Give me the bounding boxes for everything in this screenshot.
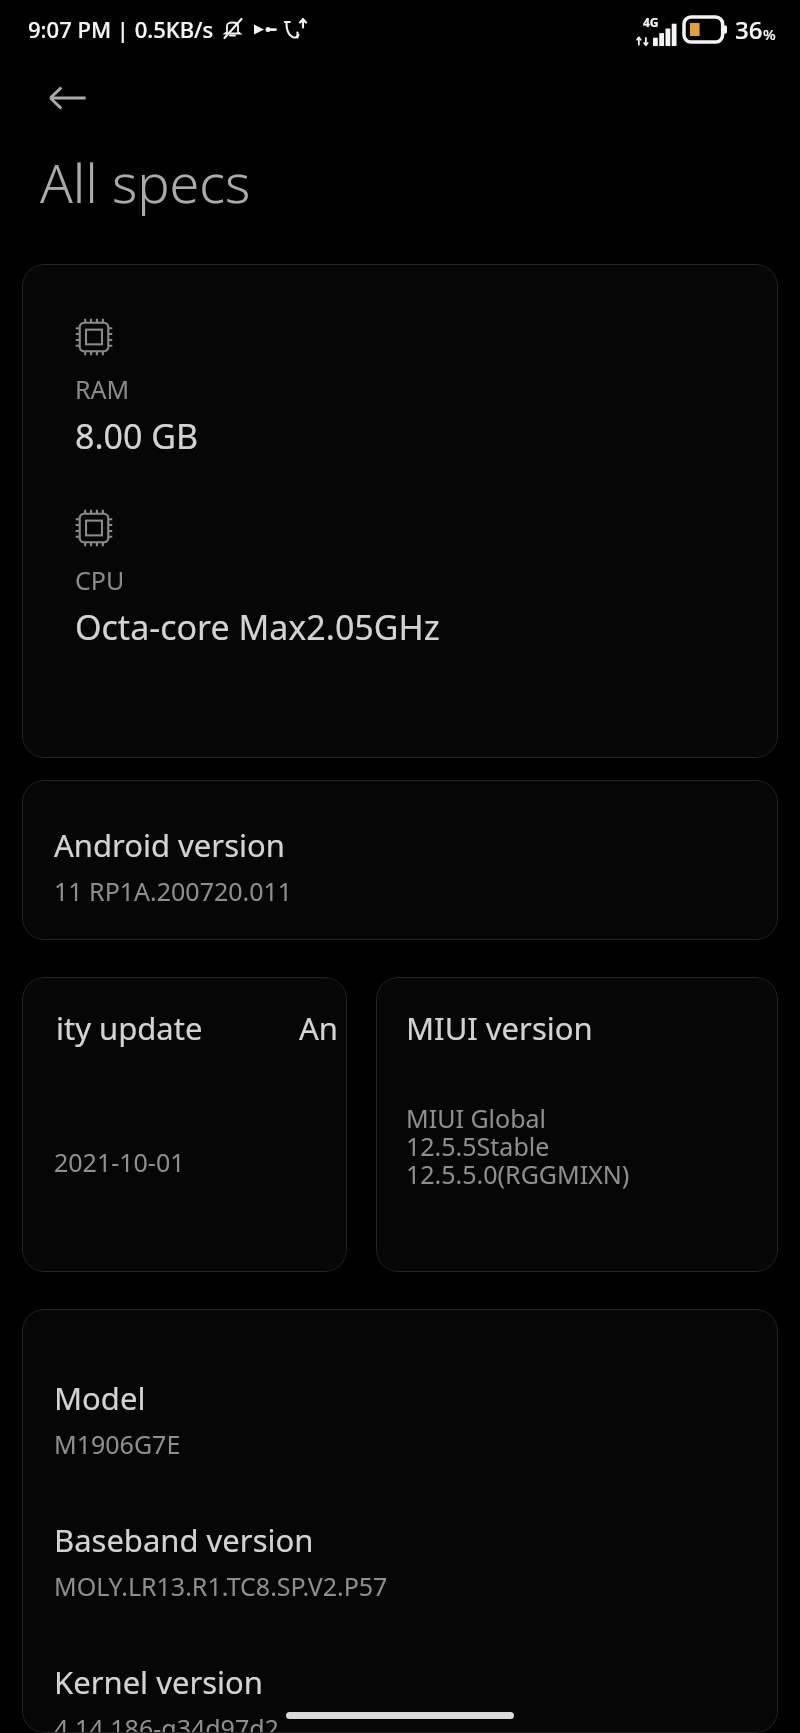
staticText: Android version xyxy=(54,824,285,866)
staticText: 11 RP1A.200720.011 xyxy=(54,874,293,908)
staticText: Baseband version xyxy=(54,1519,314,1561)
staticText: And xyxy=(299,1007,347,1049)
staticText: % xyxy=(763,24,776,44)
staticText: CPU xyxy=(75,563,125,597)
staticText: All specs xyxy=(40,145,251,219)
staticText: MIUI version xyxy=(406,1007,593,1049)
button[interactable]: MIUI version xyxy=(376,977,778,1272)
button[interactable]: ity update xyxy=(22,977,347,1272)
staticText: 4.14.186-g34d97d2 xyxy=(54,1711,279,1733)
button[interactable]: Android version xyxy=(22,780,778,940)
button[interactable]: RAM xyxy=(22,264,778,758)
staticText: RAM xyxy=(75,372,130,406)
staticText: MOLY.LR13.R1.TC8.SP.V2.P57 xyxy=(54,1569,388,1603)
staticText: 4G xyxy=(643,14,659,30)
staticText: 2021-10-01 xyxy=(54,1145,185,1179)
staticText: Octa-core Max2.05GHz xyxy=(75,604,440,650)
button[interactable]: Back xyxy=(38,68,98,128)
staticText: 36 xyxy=(735,13,763,46)
button[interactable]: Model xyxy=(22,1309,778,1733)
staticText: MIUI Global 12.5.5Stable 12.5.5.0(RGGMIX… xyxy=(406,1101,630,1191)
staticText: Kernel version xyxy=(54,1661,263,1703)
staticText: M1906G7E xyxy=(54,1427,181,1461)
staticText: ity update xyxy=(56,1007,203,1049)
staticText: 8.00 GB xyxy=(75,413,199,459)
staticText: Model xyxy=(54,1377,146,1419)
staticText: 9:07 PM | 0.5KB/s xyxy=(28,14,214,44)
